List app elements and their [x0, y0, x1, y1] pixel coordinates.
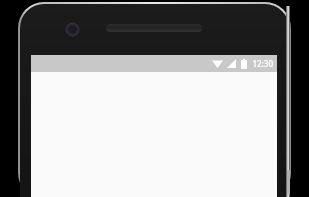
button[interactable]: Wi-Fi: [210, 57, 224, 70]
staticText: 12:30: [252, 58, 273, 69]
button[interactable]: Battery: [239, 57, 249, 70]
button[interactable]: Mobile signal: [225, 57, 237, 70]
